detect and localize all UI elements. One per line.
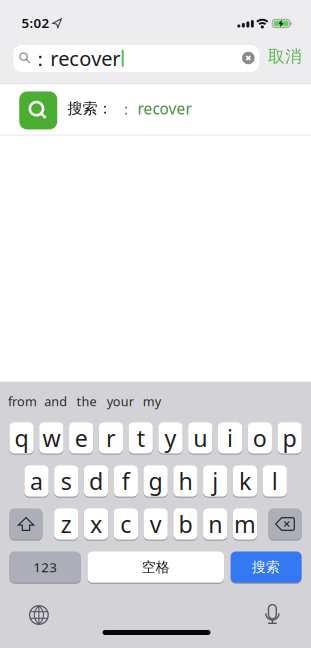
staticText: p [283,422,297,454]
button[interactable]: y [158,422,183,453]
staticText: c [120,508,131,540]
staticText: k [239,465,251,497]
button[interactable]: z [54,508,78,540]
staticText: 搜索： [67,99,112,118]
button[interactable]: r [99,422,123,453]
staticText: i [227,422,233,454]
button[interactable]: s [54,465,78,497]
staticText: the [76,393,96,410]
button[interactable]: t [129,422,153,453]
button[interactable]: Delete [268,508,301,540]
button[interactable]: m [233,508,257,540]
button[interactable]: Shift [9,508,42,540]
button[interactable]: w [39,422,63,453]
button[interactable]: from [8,393,37,410]
button[interactable]: h [173,465,197,497]
staticText: q [15,422,29,454]
button[interactable]: v [143,508,168,540]
button[interactable]: p [277,422,302,453]
staticText: 搜索 [252,558,280,576]
button[interactable]: and [44,393,67,410]
button[interactable]: my [143,393,161,410]
button[interactable]: c [114,508,138,540]
staticText: g [149,465,163,497]
button[interactable]: 搜索 [231,551,301,583]
button[interactable]: u [188,422,212,453]
button[interactable]: Clear text [242,52,255,64]
staticText: y [164,422,176,454]
button[interactable]: 搜索： [0,84,311,135]
button[interactable]: n [203,508,227,540]
button[interactable]: j [203,465,227,497]
button[interactable]: o [248,422,272,453]
button[interactable]: Search [13,45,259,72]
button[interactable]: k [233,465,257,497]
staticText: s [61,465,72,497]
staticText: f [122,465,130,497]
button[interactable]: i [218,422,242,453]
button[interactable]: q [9,422,34,453]
staticText: 取消 [268,46,302,67]
staticText: ：recover [30,45,120,72]
button[interactable]: 空格 [87,551,224,583]
staticText: n [208,508,222,540]
staticText: 5:02 [21,14,49,32]
button[interactable]: the [76,393,96,410]
staticText: o [253,422,267,454]
staticText: t [137,422,145,454]
button[interactable]: Dictate [263,604,281,625]
button[interactable]: d [84,465,108,497]
button[interactable]: f [114,465,138,497]
staticText: d [89,465,103,497]
staticText: e [75,422,88,454]
button[interactable]: x [84,508,108,540]
button[interactable]: your [107,393,134,410]
staticText: l [272,465,278,497]
staticText: x [90,508,102,540]
staticText: and [44,393,67,410]
button[interactable]: 取消 [263,43,307,69]
button[interactable]: e [69,422,93,453]
staticText: my [143,393,161,410]
staticText: j [212,465,218,497]
button[interactable]: l [263,465,287,497]
button[interactable]: a [24,465,49,497]
button[interactable]: 123 [9,551,81,583]
button[interactable]: Next keyboard [29,605,49,625]
staticText: b [178,508,192,540]
staticText: your [107,393,134,410]
staticText: a [30,465,43,497]
staticText: 空格 [142,558,170,576]
staticText: w [42,422,60,454]
staticText: u [193,422,207,454]
staticText: 123 [33,558,57,576]
staticText: from [8,393,37,410]
staticText: r [106,422,116,454]
staticText: m [234,508,256,540]
staticText: z [61,508,72,540]
staticText: ： recover [118,98,191,119]
staticText: v [150,508,162,540]
staticText: h [178,465,192,497]
button[interactable]: g [143,465,168,497]
button[interactable]: b [173,508,197,540]
